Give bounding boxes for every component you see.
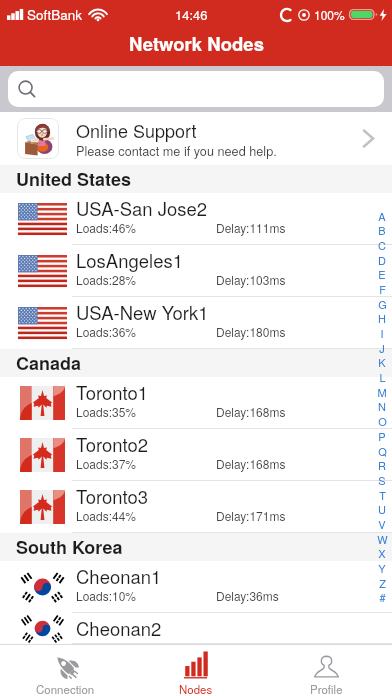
staticText: Cheonan2 xyxy=(76,615,162,641)
staticText: Delay:168ms xyxy=(216,455,286,472)
button[interactable]: Y xyxy=(372,560,392,574)
staticText: Toronto3 xyxy=(76,483,149,509)
staticText: Nodes xyxy=(179,681,213,696)
button[interactable]: S xyxy=(372,472,392,486)
staticText: X xyxy=(378,545,386,559)
staticText: G xyxy=(378,296,387,310)
button[interactable]: M xyxy=(372,384,392,398)
button[interactable]: A xyxy=(372,208,392,222)
button[interactable]: U xyxy=(372,501,392,515)
staticText: Please contact me if you need help. xyxy=(76,141,277,159)
button[interactable]: G xyxy=(372,296,392,310)
staticText: O xyxy=(378,413,387,427)
button[interactable]: E xyxy=(372,266,392,280)
staticText: S xyxy=(378,472,386,486)
button[interactable]: USA-San Jose2 xyxy=(0,193,392,245)
staticText: W xyxy=(377,531,388,545)
staticText: N xyxy=(378,398,386,412)
button[interactable]: T xyxy=(372,487,392,501)
button[interactable]: Q xyxy=(372,443,392,457)
staticText: USA-San Jose2 xyxy=(76,195,208,221)
staticText: LosAngeles1 xyxy=(76,247,183,273)
staticText: J xyxy=(379,340,385,354)
staticText: Delay:38ms xyxy=(216,639,279,656)
button[interactable]: D xyxy=(372,252,392,266)
staticText: Online Support xyxy=(76,117,197,143)
staticText: I xyxy=(380,325,384,339)
button[interactable]: H xyxy=(372,310,392,324)
staticText: Delay:103ms xyxy=(216,271,286,288)
button[interactable]: J xyxy=(372,340,392,354)
staticText: P xyxy=(378,428,386,442)
button[interactable]: R xyxy=(372,457,392,471)
button[interactable]: X xyxy=(372,545,392,559)
staticText: Loads:36% xyxy=(76,323,137,340)
staticText: E xyxy=(378,266,386,280)
button[interactable] xyxy=(8,71,384,107)
staticText: D xyxy=(378,252,386,266)
button[interactable]: Toronto3 xyxy=(0,481,392,533)
button[interactable]: L xyxy=(372,369,392,383)
button[interactable]: Z xyxy=(372,575,392,589)
staticText: K xyxy=(378,354,386,368)
staticText: 100% xyxy=(314,6,345,23)
button[interactable]: F xyxy=(372,281,392,295)
staticText: Loads:37% xyxy=(76,455,137,472)
staticText: Network Nodes xyxy=(129,30,264,56)
staticText: Delay:180ms xyxy=(216,323,286,340)
button[interactable]: Toronto2 xyxy=(0,429,392,481)
staticText: Cheonan1 xyxy=(76,563,162,589)
staticText: Delay:36ms xyxy=(216,587,279,604)
button[interactable]: USA-New York1 xyxy=(0,297,392,349)
staticText: V xyxy=(378,516,386,530)
staticText: M xyxy=(377,384,387,398)
staticText: Y xyxy=(378,560,386,574)
staticText: R xyxy=(378,457,386,471)
button[interactable]: Nodes xyxy=(130,645,261,696)
staticText: U xyxy=(378,501,386,515)
button[interactable]: Profile xyxy=(261,645,392,696)
staticText: C xyxy=(378,237,386,251)
staticText: USA-New York1 xyxy=(76,299,209,325)
button[interactable]: K xyxy=(372,354,392,368)
staticText: Loads:44% xyxy=(76,507,137,524)
staticText: Loads:12% xyxy=(76,639,137,656)
staticText: SoftBank xyxy=(27,5,83,24)
button[interactable]: Online Support xyxy=(0,112,392,165)
button[interactable]: Connection xyxy=(0,645,130,696)
staticText: # xyxy=(379,589,386,603)
button[interactable]: C xyxy=(372,237,392,251)
staticText: Loads:28% xyxy=(76,271,137,288)
staticText: B xyxy=(378,222,386,236)
staticText: Canada xyxy=(16,350,82,376)
button[interactable]: N xyxy=(372,398,392,412)
staticText: Loads:10% xyxy=(76,587,137,604)
button[interactable]: V xyxy=(372,516,392,530)
staticText: Toronto1 xyxy=(76,379,149,405)
staticText: Loads:35% xyxy=(76,403,137,420)
staticText: Delay:171ms xyxy=(216,507,286,524)
staticText: T xyxy=(379,487,386,501)
staticText: Profile xyxy=(310,681,343,696)
staticText: United States xyxy=(16,166,132,192)
staticText: Z xyxy=(379,575,386,589)
button[interactable]: O xyxy=(372,413,392,427)
button[interactable]: Toronto1 xyxy=(0,377,392,429)
staticText: H xyxy=(378,310,386,324)
staticText: Loads:46% xyxy=(76,219,137,236)
staticText: Q xyxy=(378,443,387,457)
staticText: Toronto2 xyxy=(76,431,149,457)
staticText: A xyxy=(378,208,386,222)
button[interactable]: LosAngeles1 xyxy=(0,245,392,297)
button[interactable]: # xyxy=(372,589,392,603)
staticText: L xyxy=(379,369,386,383)
button[interactable]: Cheonan1 xyxy=(0,561,392,613)
button[interactable]: W xyxy=(372,531,392,545)
staticText: 14:46 xyxy=(175,5,208,24)
staticText: Connection xyxy=(36,681,95,696)
button[interactable]: I xyxy=(372,325,392,339)
staticText: Delay:111ms xyxy=(216,219,286,236)
button[interactable]: P xyxy=(372,428,392,442)
button[interactable]: B xyxy=(372,222,392,236)
button[interactable]: Cheonan2 xyxy=(0,613,392,644)
